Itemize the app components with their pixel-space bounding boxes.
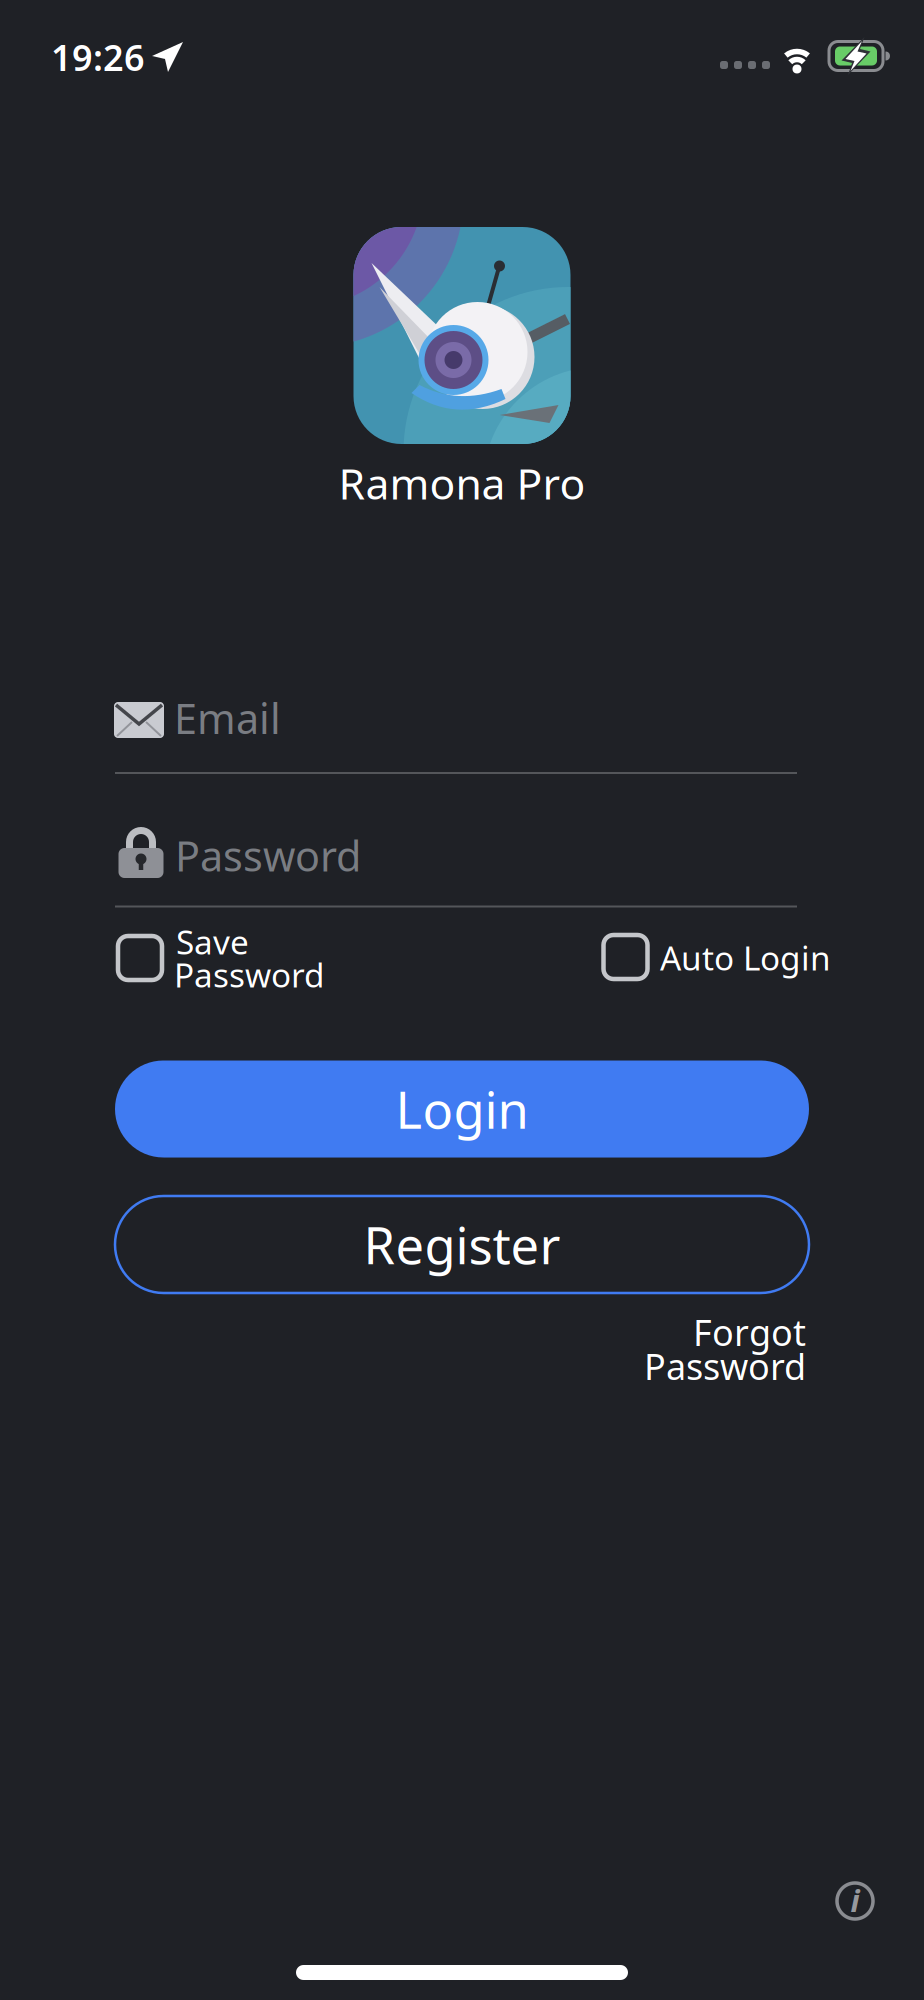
button[interactable]: Save bbox=[114, 930, 594, 986]
staticText: Password bbox=[644, 1342, 806, 1390]
button[interactable]: Forgot bbox=[400, 1315, 806, 1383]
staticText: Login bbox=[395, 1075, 528, 1143]
staticText: Register bbox=[363, 1211, 560, 1278]
staticText: 19:26 bbox=[51, 33, 145, 81]
staticText: Auto Login bbox=[660, 935, 831, 980]
staticText: i bbox=[850, 1880, 859, 1920]
button[interactable]: Login bbox=[115, 1060, 809, 1157]
staticText: Email bbox=[174, 691, 281, 745]
staticText: Password bbox=[175, 828, 361, 883]
button[interactable]: Password bbox=[114, 790, 798, 920]
staticText: Forgot bbox=[693, 1308, 806, 1356]
button[interactable]: i bbox=[833, 1879, 877, 1923]
staticText: Save bbox=[176, 919, 249, 964]
button[interactable]: Email bbox=[114, 660, 798, 790]
button[interactable]: Register bbox=[115, 1196, 809, 1293]
button[interactable]: Auto Login bbox=[599, 928, 859, 984]
staticText: Password bbox=[174, 952, 325, 997]
staticText: Ramona Pro bbox=[338, 455, 585, 511]
